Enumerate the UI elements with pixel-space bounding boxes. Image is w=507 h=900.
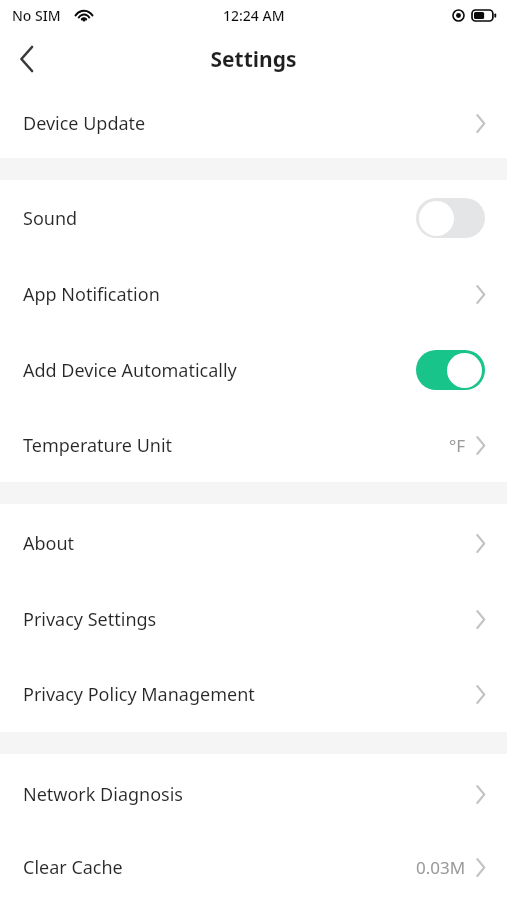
staticText: Device Update bbox=[23, 111, 476, 136]
button[interactable]: Sound bbox=[0, 180, 507, 256]
button[interactable]: Clear Cache bbox=[0, 834, 507, 900]
staticText: Network Diagnosis bbox=[23, 782, 476, 807]
button[interactable]: Network Diagnosis bbox=[0, 754, 507, 834]
staticText: Privacy Settings bbox=[23, 607, 476, 632]
button[interactable]: Add Device Automatically bbox=[0, 332, 507, 408]
staticText: App Notification bbox=[23, 282, 476, 307]
button[interactable]: Back bbox=[0, 32, 54, 86]
button[interactable]: Privacy Settings bbox=[0, 582, 507, 657]
staticText: 12:24 AM bbox=[223, 6, 285, 25]
staticText: Add Device Automatically bbox=[23, 358, 416, 383]
button[interactable]: Device Update bbox=[0, 88, 507, 158]
staticText: No SIM bbox=[12, 6, 61, 25]
staticText: Clear Cache bbox=[23, 855, 416, 880]
staticText: Temperature Unit bbox=[23, 433, 449, 458]
staticText: °F bbox=[449, 434, 466, 457]
button[interactable]: Off bbox=[416, 198, 485, 238]
button[interactable]: Temperature Unit bbox=[0, 408, 507, 482]
staticText: Settings bbox=[210, 45, 297, 74]
staticText: Sound bbox=[23, 206, 416, 231]
button[interactable]: App Notification bbox=[0, 256, 507, 332]
button[interactable]: About bbox=[0, 504, 507, 582]
button[interactable]: On bbox=[416, 350, 485, 390]
staticText: Privacy Policy Management bbox=[23, 682, 476, 707]
staticText: About bbox=[23, 531, 476, 556]
button[interactable]: Privacy Policy Management bbox=[0, 657, 507, 732]
staticText: 0.03M bbox=[416, 856, 466, 879]
